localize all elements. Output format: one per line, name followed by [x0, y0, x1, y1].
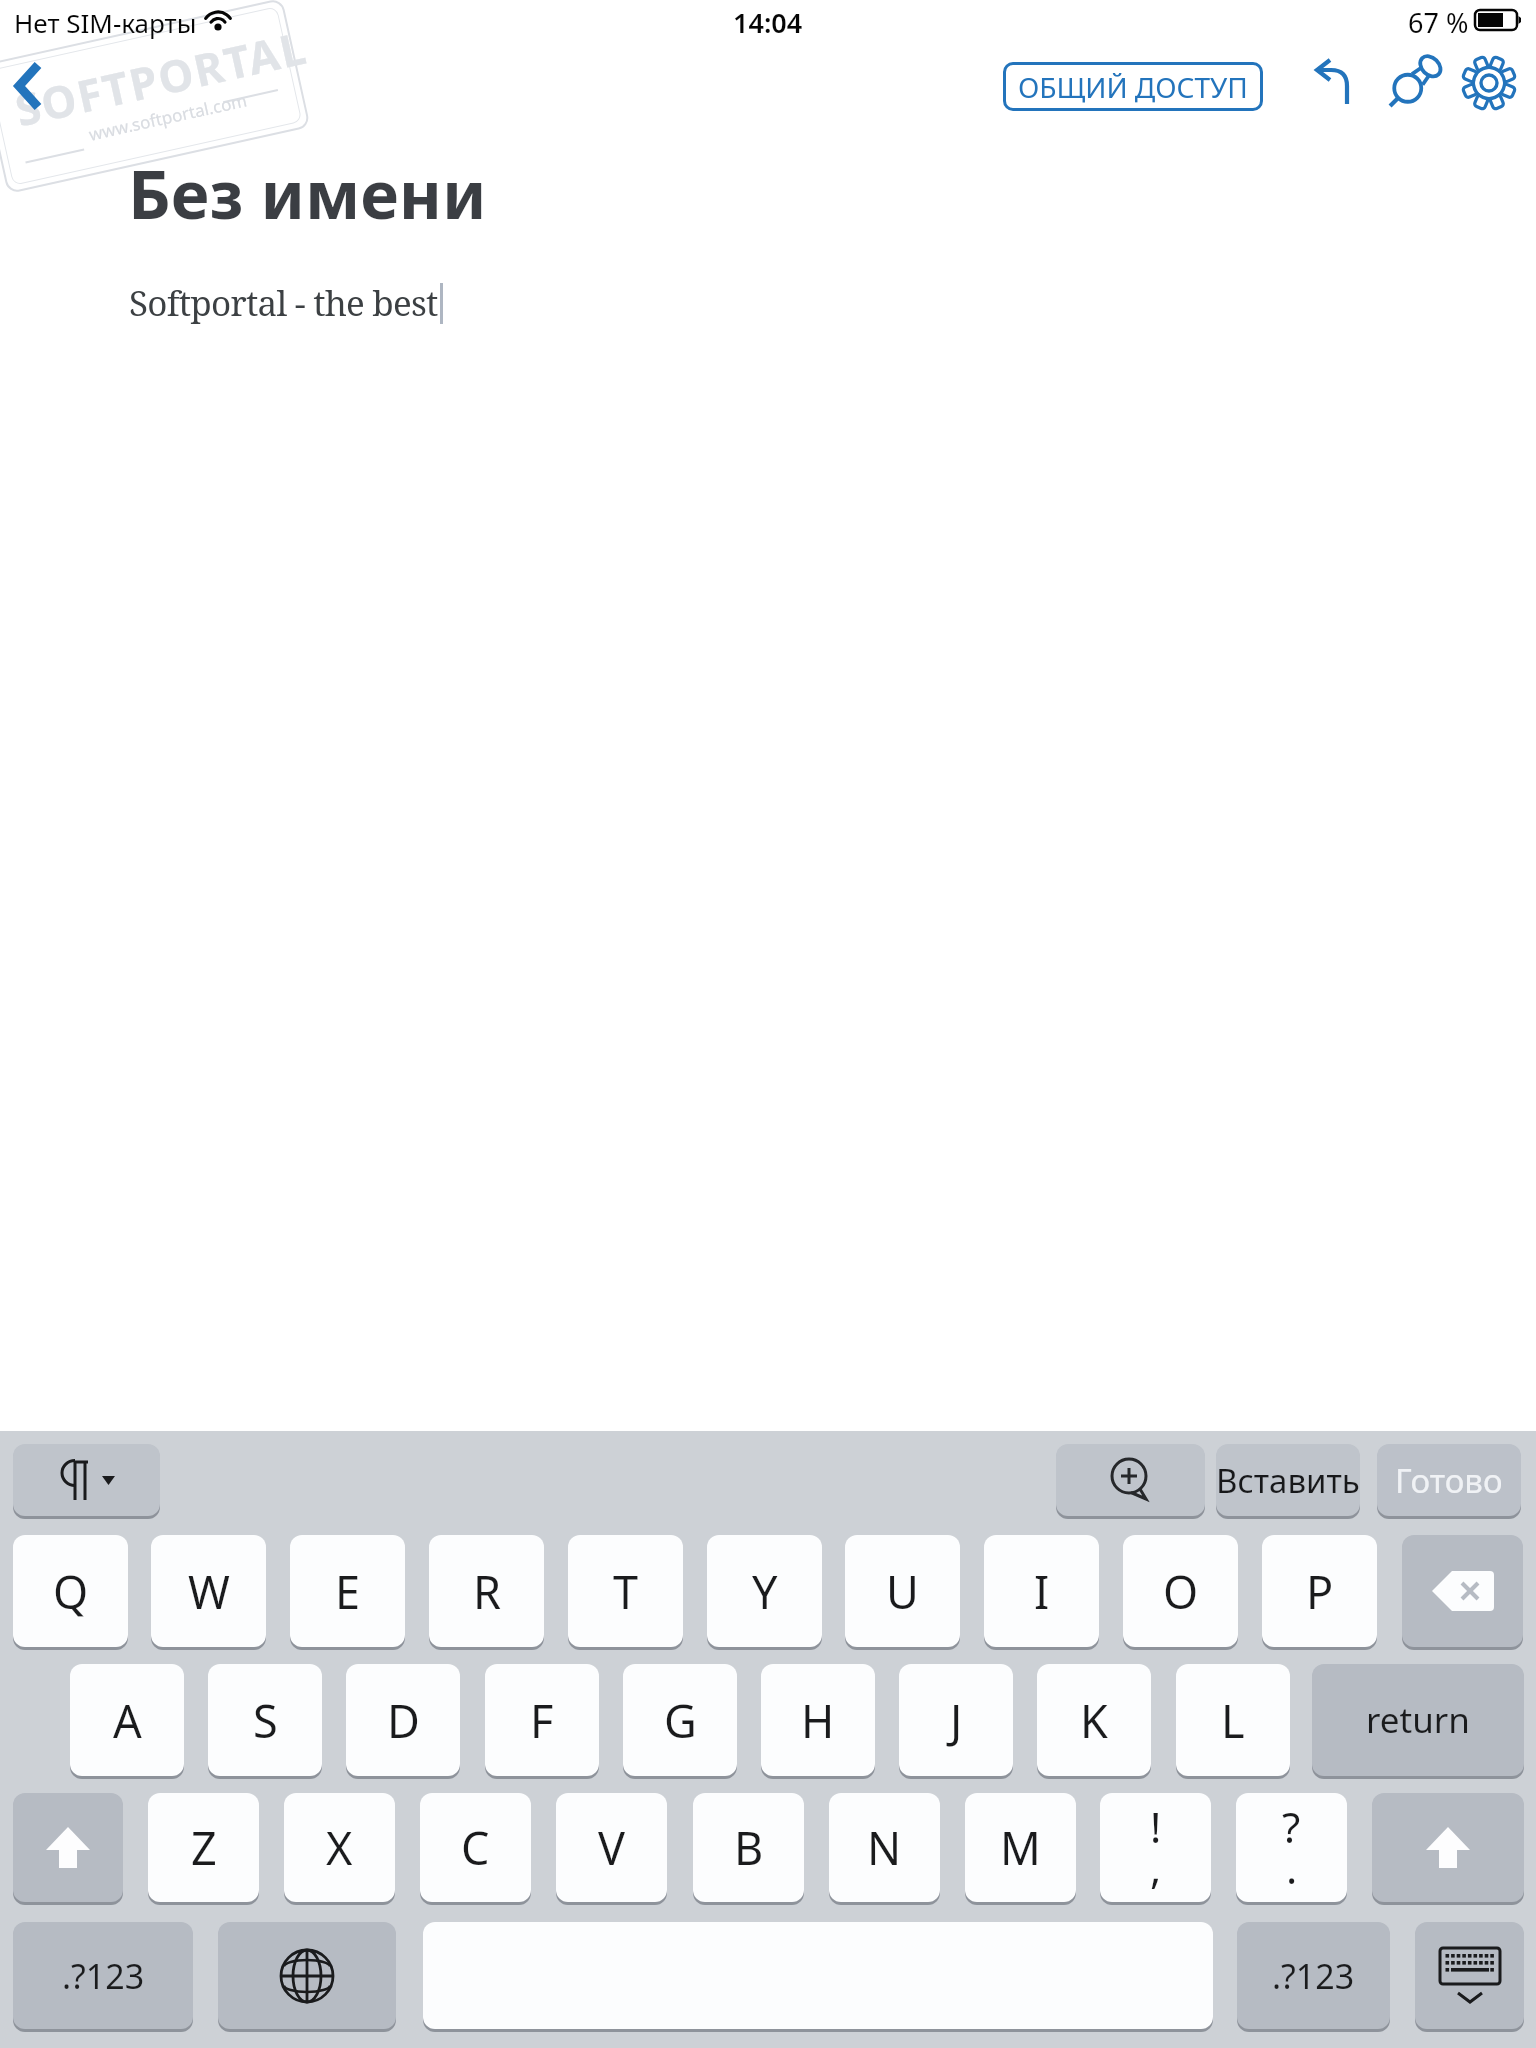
staticText: E: [335, 1561, 361, 1622]
staticText: L: [1221, 1690, 1245, 1751]
staticText: .?123: [1272, 1953, 1355, 1999]
button[interactable]: R: [429, 1535, 544, 1647]
button[interactable]: [218, 1922, 396, 2029]
staticText: Z: [191, 1817, 217, 1878]
staticText: Y: [752, 1561, 778, 1622]
button[interactable]: W: [151, 1535, 266, 1647]
staticText: B: [734, 1817, 764, 1878]
staticText: C: [461, 1817, 490, 1878]
button[interactable]: [13, 1793, 123, 1902]
staticText: Вставить: [1216, 1458, 1360, 1503]
staticText: J: [950, 1690, 963, 1751]
button[interactable]: F: [485, 1664, 599, 1776]
staticText: O: [1163, 1561, 1199, 1622]
staticText: Softportal - the best: [129, 279, 438, 327]
button[interactable]: N: [829, 1793, 940, 1902]
staticText: Готово: [1395, 1458, 1503, 1503]
button[interactable]: V: [556, 1793, 667, 1902]
staticText: A: [113, 1690, 142, 1751]
staticText: R: [473, 1561, 501, 1622]
button[interactable]: [1415, 1922, 1524, 2029]
staticText: V: [598, 1817, 626, 1878]
staticText: !: [1150, 1798, 1162, 1855]
button[interactable]: S: [208, 1664, 322, 1776]
staticText: N: [867, 1817, 902, 1878]
button[interactable]: I: [984, 1535, 1099, 1647]
button[interactable]: P: [1262, 1535, 1377, 1647]
button[interactable]: [1462, 56, 1516, 110]
button[interactable]: M: [965, 1793, 1076, 1902]
button[interactable]: O: [1123, 1535, 1238, 1647]
button[interactable]: Y: [707, 1535, 822, 1647]
button[interactable]: [1372, 1793, 1524, 1902]
button[interactable]: E: [290, 1535, 405, 1647]
staticText: I: [1034, 1561, 1050, 1622]
staticText: U: [886, 1561, 919, 1622]
staticText: H: [801, 1690, 835, 1751]
staticText: .?123: [62, 1953, 145, 1999]
button[interactable]: Z: [148, 1793, 259, 1902]
staticText: P: [1306, 1561, 1334, 1622]
button[interactable]: K: [1037, 1664, 1151, 1776]
button[interactable]: C: [420, 1793, 531, 1902]
button[interactable]: return: [1312, 1664, 1524, 1776]
staticText: 14:04: [733, 4, 803, 41]
staticText: F: [530, 1690, 554, 1751]
staticText: ,: [1150, 1839, 1162, 1896]
button[interactable]: [14, 62, 44, 108]
button[interactable]: A: [70, 1664, 184, 1776]
button[interactable]: H: [761, 1664, 875, 1776]
staticText: ?: [1282, 1798, 1301, 1855]
staticText: D: [387, 1690, 420, 1751]
button[interactable]: [1384, 56, 1440, 112]
button[interactable]: Готово: [1377, 1444, 1521, 1516]
staticText: S: [253, 1690, 278, 1751]
button[interactable]: ?: [1236, 1793, 1347, 1902]
button[interactable]: J: [899, 1664, 1013, 1776]
button[interactable]: G: [623, 1664, 737, 1776]
button[interactable]: Q: [13, 1535, 128, 1647]
staticText: T: [613, 1561, 639, 1622]
button[interactable]: [1402, 1535, 1523, 1647]
staticText: SOFTPORTAL: [9, 17, 312, 140]
button[interactable]: X: [284, 1793, 395, 1902]
button[interactable]: .?123: [13, 1922, 193, 2029]
button[interactable]: [13, 1444, 160, 1516]
button[interactable]: Вставить: [1216, 1444, 1360, 1516]
staticText: M: [1000, 1817, 1041, 1878]
button[interactable]: U: [845, 1535, 960, 1647]
staticText: .: [1286, 1839, 1298, 1896]
button[interactable]: T: [568, 1535, 683, 1647]
staticText: Q: [53, 1561, 89, 1622]
staticText: 67 %: [1408, 4, 1469, 41]
staticText: W: [188, 1561, 230, 1622]
button[interactable]: ОБЩИЙ ДОСТУП: [1003, 62, 1263, 111]
staticText: Без имени: [128, 148, 487, 238]
button[interactable]: [1311, 58, 1351, 106]
button[interactable]: !: [1100, 1793, 1211, 1902]
staticText: K: [1080, 1690, 1108, 1751]
staticText: www.softportal.com: [86, 88, 250, 146]
staticText: return: [1366, 1696, 1470, 1744]
staticText: Нет SIM-карты: [14, 5, 197, 40]
staticText: G: [664, 1690, 697, 1751]
button[interactable]: .?123: [1237, 1922, 1390, 2029]
button[interactable]: [1056, 1444, 1205, 1516]
staticText: X: [326, 1817, 353, 1878]
button[interactable]: L: [1176, 1664, 1290, 1776]
button[interactable]: B: [693, 1793, 804, 1902]
staticText: ОБЩИЙ ДОСТУП: [1018, 68, 1248, 106]
button[interactable]: D: [346, 1664, 460, 1776]
